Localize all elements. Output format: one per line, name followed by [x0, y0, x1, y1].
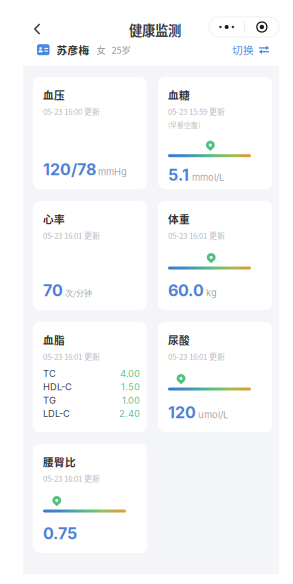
staticText: 切换 — [232, 42, 254, 57]
staticText: 05-23 16:01 更新 — [43, 350, 100, 362]
staticText: 血压 — [43, 87, 65, 102]
button[interactable]: Close mini program — [245, 17, 279, 37]
staticText: 05-23 16:01 更新 — [43, 229, 100, 241]
staticText: 次/分钟 — [65, 287, 92, 298]
staticText: 60.0 — [168, 281, 204, 300]
staticText: 心率 — [43, 211, 65, 226]
button[interactable]: 切换 — [232, 40, 269, 59]
staticText: 1.00 — [122, 395, 140, 406]
staticText: LDL-C — [43, 408, 70, 419]
staticText: 25岁 — [111, 43, 130, 56]
staticText: 0.75 — [43, 524, 77, 543]
staticText: 120 — [168, 403, 196, 422]
staticText: TG — [43, 395, 56, 406]
button[interactable]: More — [209, 17, 244, 37]
staticText: 血糖 — [168, 87, 190, 102]
staticText: mmol/L — [192, 172, 224, 183]
staticText: umol/L — [198, 409, 228, 420]
staticText: 2.40 — [119, 408, 140, 419]
staticText: 05-23 16:01 更新 — [168, 350, 225, 362]
staticText: 苏彦梅 — [56, 42, 89, 57]
staticText: 腰臀比 — [43, 454, 76, 469]
staticText: HDL-C — [43, 381, 72, 393]
staticText: 体重 — [168, 211, 190, 226]
staticText: 05-23 16:00 更新 — [43, 105, 100, 117]
button[interactable]: 血脂 — [33, 322, 147, 432]
staticText: 05-23 16:01 更新 — [43, 472, 100, 484]
staticText: 5.1 — [168, 165, 189, 185]
button[interactable]: 血糖 — [158, 77, 272, 189]
button[interactable]: 体重 — [158, 201, 272, 310]
staticText: mmHg — [98, 166, 127, 177]
staticText: TC — [43, 368, 56, 379]
staticText: 尿酸 — [168, 332, 190, 347]
staticText: 血脂 — [43, 332, 65, 347]
staticText: (早餐空腹) — [168, 120, 200, 130]
staticText: 70 — [43, 281, 63, 300]
button[interactable]: 尿酸 — [158, 322, 272, 432]
button[interactable]: 心率 — [33, 201, 147, 310]
staticText: 4.00 — [120, 368, 140, 379]
button[interactable]: Back — [24, 14, 50, 44]
staticText: kg — [206, 287, 217, 298]
button[interactable]: 血压 — [33, 77, 147, 189]
staticText: 120/78 — [43, 160, 96, 179]
staticText: 05-23 15:59 更新 — [168, 105, 225, 117]
staticText: 健康监测 — [129, 20, 181, 39]
staticText: 女 — [96, 43, 105, 56]
staticText: 05-23 16:01 更新 — [168, 229, 225, 241]
staticText: 1.50 — [121, 381, 140, 393]
button[interactable]: 腰臀比 — [33, 444, 147, 553]
